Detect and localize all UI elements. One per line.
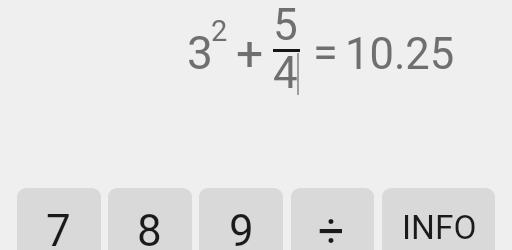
staticText: 7 xyxy=(46,205,71,250)
staticText: INFO xyxy=(402,208,477,247)
staticText: 4 xyxy=(273,47,298,99)
staticText: 8 xyxy=(137,205,162,250)
staticText: 2 xyxy=(211,14,228,48)
staticText: 9 xyxy=(229,205,254,250)
button[interactable] xyxy=(199,188,283,250)
button[interactable] xyxy=(17,188,101,250)
button[interactable] xyxy=(108,188,192,250)
staticText: = xyxy=(313,26,338,79)
button[interactable] xyxy=(291,188,374,250)
button[interactable] xyxy=(382,188,495,250)
staticText: 10.25 xyxy=(345,29,455,80)
staticText: 5 xyxy=(273,0,298,51)
staticText: + xyxy=(236,25,264,81)
staticText: 3 xyxy=(187,26,213,80)
staticText: ÷ xyxy=(318,204,345,250)
